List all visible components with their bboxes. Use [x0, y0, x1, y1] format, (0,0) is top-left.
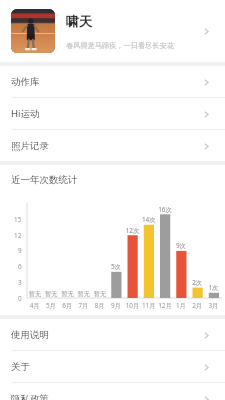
staticText: 使用说明 — [11, 329, 198, 341]
staticText: 照片记录 — [11, 140, 198, 152]
staticText: 关于 — [11, 361, 198, 373]
staticText: 啸天 — [66, 13, 92, 29]
button[interactable]: 照片记录 — [0, 130, 225, 161]
staticText: 春风得意马蹄疾，一日看尽长安花 — [66, 41, 174, 50]
button[interactable]: 隐私政策 — [0, 383, 225, 400]
staticText: 近一年次数统计 — [11, 174, 78, 186]
staticText: 动作库 — [11, 76, 198, 88]
staticText: Hi运动 — [11, 107, 198, 120]
staticText: 隐私政策 — [11, 393, 198, 400]
button[interactable]: 动作库 — [0, 66, 225, 97]
button[interactable]: 关于 — [0, 351, 225, 382]
button[interactable]: 使用说明 — [0, 319, 225, 350]
button[interactable]: 啸天 — [0, 0, 225, 62]
button[interactable]: Hi运动 — [0, 98, 225, 129]
